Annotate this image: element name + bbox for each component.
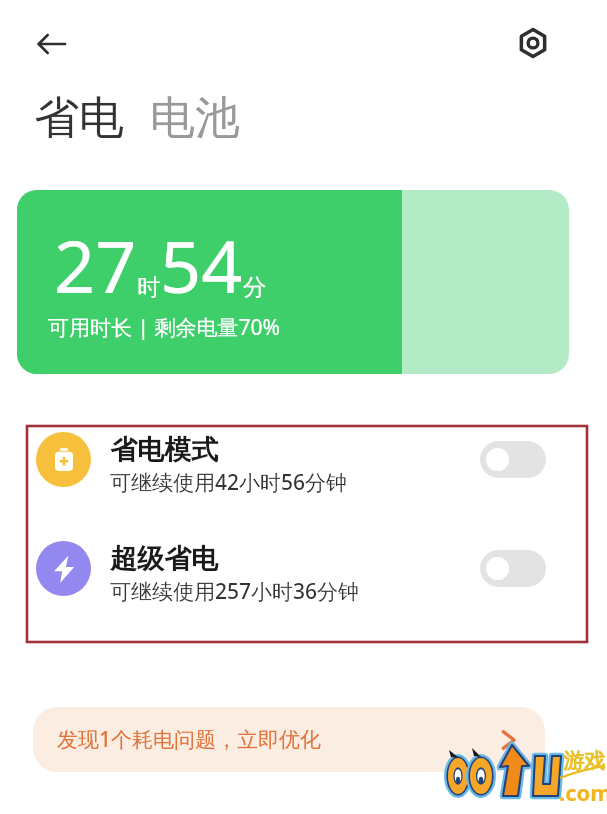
button[interactable]: 发现1个耗电问题，立即优化	[33, 707, 545, 772]
button[interactable]: Toggle 超级省电	[480, 550, 546, 587]
button[interactable]: Back	[21, 14, 81, 74]
staticText: 可用时长 | 剩余电量70%	[48, 313, 280, 342]
staticText: .com	[559, 777, 607, 807]
button[interactable]: 电池	[150, 90, 240, 147]
staticText: 发现1个耗电问题，立即优化	[57, 725, 322, 754]
staticText: 54	[160, 216, 243, 314]
staticText: 27	[54, 216, 137, 314]
staticText: 时	[137, 273, 160, 302]
staticText: 可继续使用42小时56分钟	[110, 468, 348, 497]
button[interactable]: 超级省电	[0, 528, 607, 608]
staticText: 分	[243, 273, 266, 302]
staticText: 超级省电	[110, 542, 218, 576]
staticText: 可继续使用257小时36分钟	[110, 577, 360, 606]
button[interactable]: 27	[17, 190, 569, 374]
button[interactable]: 省电	[34, 90, 124, 147]
staticText: 省电	[34, 90, 124, 147]
staticText: 省电模式	[110, 433, 218, 467]
button[interactable]: Settings	[503, 13, 563, 73]
staticText: 游戏	[563, 748, 605, 774]
staticText: 电池	[150, 90, 240, 147]
button[interactable]: 省电模式	[0, 419, 607, 499]
button[interactable]: Toggle 省电模式	[480, 441, 546, 478]
